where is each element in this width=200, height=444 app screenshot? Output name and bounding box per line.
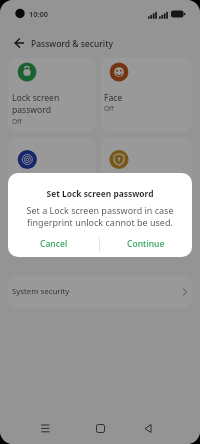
staticText: 10:00 — [29, 9, 48, 19]
staticText: System security — [12, 286, 70, 297]
staticText: Continue — [127, 238, 165, 250]
staticText: Lock screen password — [12, 92, 60, 116]
button[interactable]: Continue — [100, 231, 192, 257]
staticText: Face — [104, 92, 123, 104]
button[interactable] — [8, 33, 28, 53]
staticText: Off — [104, 104, 114, 113]
button[interactable] — [101, 138, 192, 212]
button[interactable]: Cancel — [8, 231, 99, 257]
staticText: Password & security — [31, 38, 113, 50]
button[interactable] — [8, 138, 96, 212]
staticText: Cancel — [40, 238, 68, 250]
staticText: Set a Lock screen password in case finge… — [8, 204, 192, 228]
button[interactable] — [8, 276, 192, 308]
button[interactable] — [8, 58, 96, 132]
button[interactable] — [101, 58, 192, 132]
staticText: Off — [12, 117, 22, 126]
staticText: Set Lock screen password — [8, 188, 192, 199]
